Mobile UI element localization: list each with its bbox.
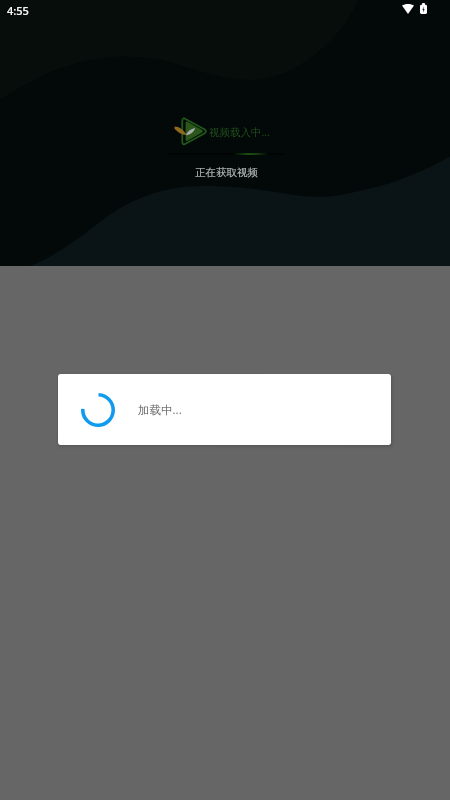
staticText: 加载中... [138,402,182,418]
other: Battery [420,3,427,14]
staticText: 视频载入中... [209,125,270,139]
staticText: 正在获取视频 [195,166,258,179]
staticText: 4:55 [7,3,29,18]
other: Wi-Fi [402,4,414,14]
other: Loading [81,393,115,427]
button[interactable]: Loading [58,374,391,445]
